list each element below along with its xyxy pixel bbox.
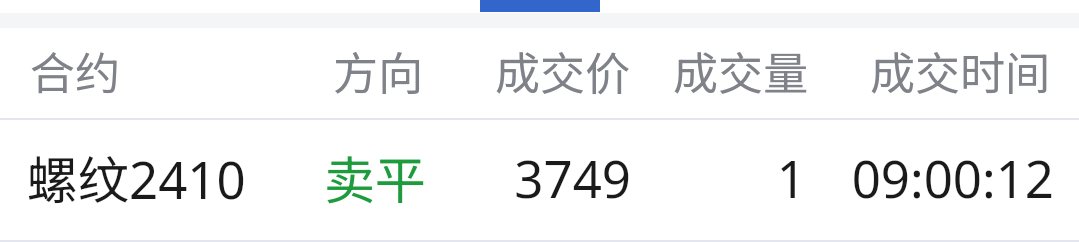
staticText: 成交量 xyxy=(658,38,808,103)
staticText: 方向 xyxy=(268,38,488,103)
staticText: 09:00:12 xyxy=(814,143,1054,212)
staticText: 成交价 xyxy=(390,38,630,103)
staticText: 1 xyxy=(656,143,806,212)
staticText: 3749 xyxy=(391,143,631,212)
staticText: 卖平 xyxy=(265,140,485,214)
staticText: 成交时间 xyxy=(810,38,1050,103)
button[interactable]: 螺纹2410 xyxy=(0,120,1079,240)
staticText: 合约 xyxy=(30,38,330,103)
staticText: 螺纹2410 xyxy=(27,140,347,214)
